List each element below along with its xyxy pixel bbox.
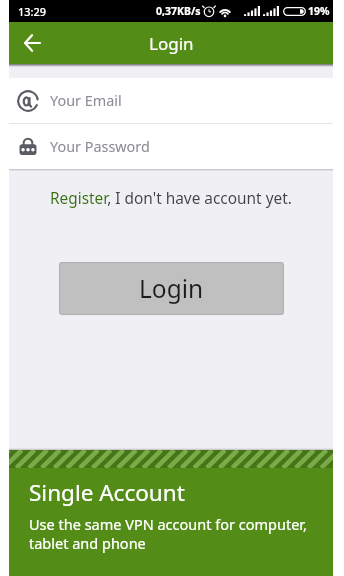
staticText: Your Password [50, 137, 150, 157]
staticText: 13:29 [18, 4, 47, 19]
staticText: Your Email [50, 91, 122, 111]
button[interactable]: Back [12, 23, 52, 63]
button[interactable]: Your Password [9, 124, 333, 169]
staticText: Use the same VPN account for computer, t… [29, 514, 317, 553]
staticText: Register, I don't have account yet. [50, 188, 292, 209]
staticText: 0,37KB/s [156, 4, 201, 18]
staticText: Login [139, 272, 204, 305]
button[interactable]: Your Email [9, 78, 333, 123]
staticText: Login [149, 32, 194, 55]
button[interactable]: Login [59, 262, 284, 315]
staticText: 19% [308, 4, 330, 18]
staticText: Single Account [29, 477, 185, 508]
